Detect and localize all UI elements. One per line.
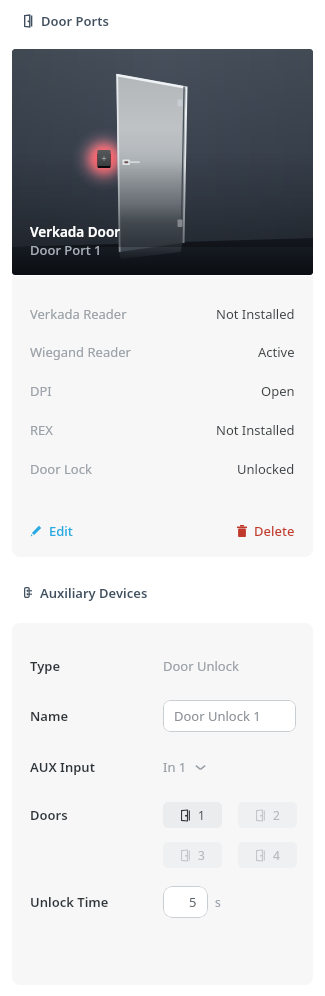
button[interactable]: Delete (233, 518, 299, 544)
other: Delete (237, 525, 247, 537)
button[interactable]: Verkada Reader (12, 298, 313, 330)
staticText: Door Lock (30, 460, 92, 478)
staticText: Wiegand Reader (30, 343, 131, 361)
staticText: Open (261, 382, 295, 400)
staticText: Door Unlock (163, 657, 239, 675)
staticText: Name (30, 707, 68, 725)
staticText: Verkada Reader (30, 305, 127, 323)
staticText: Verkada Door (30, 223, 121, 241)
staticText: Not Installed (216, 421, 295, 439)
staticText: Doors (30, 806, 68, 824)
staticText: In 1 (163, 758, 187, 776)
button[interactable]: DPI (12, 375, 313, 407)
staticText: Delete (254, 522, 295, 540)
staticText: Door Unlock 1 (174, 707, 261, 725)
staticText: DPI (30, 382, 52, 400)
button[interactable]: 5 (163, 886, 208, 918)
button[interactable]: Door Lock (12, 453, 313, 485)
staticText: 4 (273, 847, 280, 863)
staticText: REX (30, 421, 53, 439)
button[interactable]: Edit (26, 518, 77, 544)
staticText: Active (258, 343, 295, 361)
button[interactable]: 1 (163, 802, 222, 828)
staticText: Not Installed (216, 305, 295, 323)
button[interactable]: In 1 (163, 758, 206, 776)
staticText: Type (30, 657, 61, 675)
button[interactable]: Door Unlock 1 (163, 700, 296, 732)
staticText: 2 (273, 807, 280, 823)
staticText: 5 (189, 893, 197, 911)
staticText: AUX Input (30, 758, 95, 776)
staticText: Unlock Time (30, 893, 109, 911)
button[interactable]: 2 (238, 802, 297, 828)
button[interactable]: 4 (238, 842, 297, 868)
button[interactable]: 3 (163, 842, 222, 868)
staticText: Auxiliary Devices (40, 584, 148, 602)
staticText: 1 (198, 807, 205, 823)
staticText: Edit (49, 522, 73, 540)
staticText: Unlocked (237, 460, 295, 478)
staticText: Door Ports (41, 12, 109, 30)
staticText: Door Port 1 (30, 241, 102, 259)
button[interactable]: REX (12, 414, 313, 446)
staticText: 3 (198, 847, 205, 863)
button[interactable]: Wiegand Reader (12, 336, 313, 368)
other: Edit (30, 525, 42, 537)
staticText: s (215, 894, 221, 910)
